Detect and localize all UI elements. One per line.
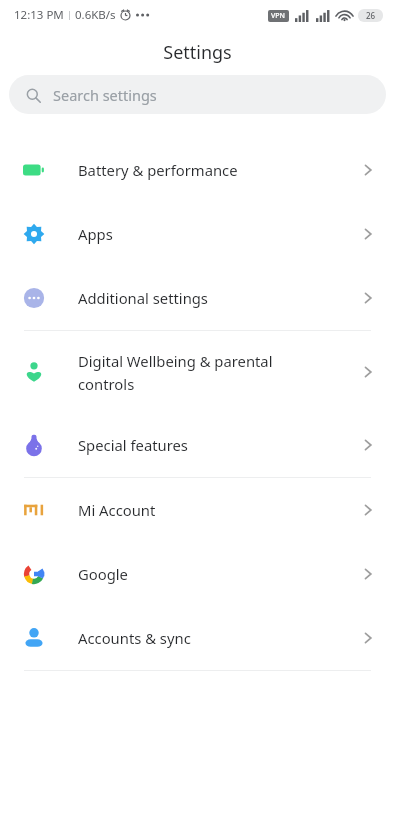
staticText: Search settings	[53, 85, 157, 105]
button[interactable]: Accounts & sync	[0, 606, 395, 670]
button[interactable]: Digital Wellbeing & parental controls	[0, 331, 395, 413]
button[interactable]: Mi Account	[0, 478, 395, 542]
staticText: VPN	[271, 11, 286, 21]
staticText: Special features	[78, 435, 188, 455]
button[interactable]: Battery & performance	[0, 138, 395, 202]
staticText: 12:13 PM	[14, 7, 64, 23]
staticText: Google	[78, 564, 128, 584]
staticText: Mi Account	[78, 500, 156, 520]
button[interactable]: Special features	[0, 413, 395, 477]
button[interactable]: Google	[0, 542, 395, 606]
staticText: 0.6KB/s	[75, 7, 116, 23]
staticText: Settings	[163, 40, 232, 65]
staticText: Accounts & sync	[78, 628, 191, 648]
button[interactable]: Search settings	[9, 75, 386, 114]
button[interactable]: Additional settings	[0, 266, 395, 330]
staticText: Battery & performance	[78, 160, 238, 180]
staticText: Digital Wellbeing & parental controls	[78, 351, 273, 394]
button[interactable]: Apps	[0, 202, 395, 266]
staticText: 26	[366, 10, 376, 21]
staticText: Apps	[78, 224, 113, 244]
staticText: Additional settings	[78, 288, 208, 308]
